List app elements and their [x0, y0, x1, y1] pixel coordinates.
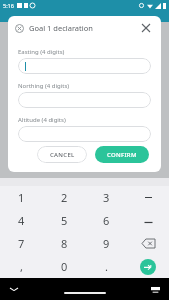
staticText: Northing (4 digits)	[18, 82, 70, 90]
staticText: Easting (4 digits)	[18, 48, 65, 56]
staticText: 5	[61, 213, 68, 228]
button[interactable]: Goal 1 declaration	[8, 16, 161, 40]
staticText: CONFIRM	[107, 151, 137, 159]
button[interactable]: Backspace	[127, 232, 169, 255]
staticText: ,	[20, 259, 23, 274]
staticText: 0	[61, 259, 68, 274]
staticText: 4	[18, 213, 25, 228]
button[interactable]: 4	[0, 209, 43, 232]
staticText: 6	[103, 213, 110, 228]
staticText: 3	[103, 190, 110, 205]
button[interactable]: 6	[85, 209, 127, 232]
button[interactable]: 8	[43, 232, 85, 255]
button[interactable]	[18, 92, 151, 108]
button[interactable]: 3	[85, 186, 127, 209]
button[interactable]: CANCEL	[37, 146, 87, 163]
staticText: .	[105, 259, 108, 274]
button[interactable]	[18, 126, 151, 142]
button[interactable]: CONFIRM	[95, 146, 149, 163]
button[interactable]: Minus	[127, 186, 169, 209]
button[interactable]: 0	[43, 255, 85, 278]
staticText: Goal 1 declaration	[29, 23, 93, 33]
button[interactable]: 1	[0, 186, 43, 209]
button[interactable]: Switch keyboard	[146, 280, 164, 298]
button[interactable]: Underscore	[127, 209, 169, 232]
button[interactable]: Close	[138, 20, 154, 36]
button[interactable]: .	[85, 255, 127, 278]
staticText: 2	[61, 190, 68, 205]
staticText: 1	[18, 190, 25, 205]
staticText: Altitude (4 digits)	[18, 116, 66, 124]
button[interactable]: 7	[0, 232, 43, 255]
staticText: CANCEL	[50, 151, 75, 159]
staticText: 7	[18, 236, 25, 251]
button[interactable]: Next	[127, 255, 169, 278]
button[interactable]: 2	[43, 186, 85, 209]
staticText: 9	[103, 236, 110, 251]
staticText: 8	[61, 236, 68, 251]
staticText: 5:16	[3, 2, 14, 9]
button[interactable]: 5	[43, 209, 85, 232]
button[interactable]	[18, 58, 151, 74]
button[interactable]: 9	[85, 232, 127, 255]
button[interactable]: Hide keyboard	[5, 280, 23, 298]
button[interactable]: ,	[0, 255, 43, 278]
